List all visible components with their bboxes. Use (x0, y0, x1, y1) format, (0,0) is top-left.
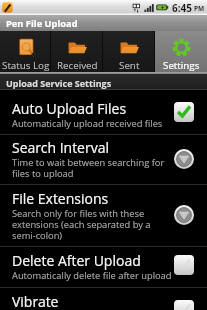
button[interactable]: Received (51, 31, 103, 72)
button[interactable]: Sent (103, 31, 155, 72)
button[interactable]: Enabled (174, 102, 194, 122)
button[interactable]: Vibrate (0, 288, 207, 310)
staticText: Automatically delete file after upload (12, 269, 172, 282)
button[interactable]: Auto Upload Files (0, 90, 207, 134)
staticText: Settings (163, 59, 200, 72)
button[interactable]: Search Interval (0, 135, 207, 184)
staticText: Auto Upload Files (12, 99, 127, 118)
staticText: Status Log (2, 59, 50, 72)
staticText: 6:45 (172, 1, 192, 15)
staticText: Received (57, 59, 98, 72)
staticText: Upload Service Settings (6, 77, 112, 89)
staticText: Vibrate (12, 292, 59, 310)
staticText: PM (194, 4, 205, 13)
staticText: File Extensions (12, 189, 109, 208)
staticText: Sent (119, 59, 140, 72)
staticText: Search only for files with these extensi… (12, 207, 151, 242)
button[interactable]: Status Log (0, 31, 51, 72)
button[interactable]: Disabled (174, 300, 194, 310)
button[interactable]: Settings (155, 31, 207, 72)
staticText: Pen File Upload (6, 17, 78, 30)
staticText: Delete After Upload (12, 251, 141, 270)
staticText: Time to wait between searching for files… (12, 156, 165, 180)
button[interactable]: Delete After Upload (0, 247, 207, 287)
staticText: Search Interval (12, 138, 110, 157)
button[interactable]: Open list (174, 149, 194, 169)
button[interactable]: Open list (174, 205, 194, 225)
button[interactable]: File Extensions (0, 185, 207, 246)
button[interactable]: Disabled (174, 255, 194, 275)
staticText: Automatically upload received files (12, 117, 163, 130)
